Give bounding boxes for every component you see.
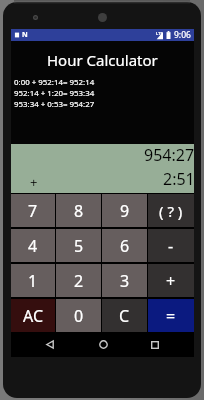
- staticText: ( ? ): [159, 201, 183, 221]
- button[interactable]: 5: [56, 229, 101, 262]
- button[interactable]: 3: [102, 264, 147, 297]
- button[interactable]: 7: [11, 194, 55, 227]
- staticText: 1: [28, 270, 38, 292]
- button[interactable]: Home: [90, 332, 116, 357]
- button[interactable]: C: [102, 299, 147, 332]
- staticText: 953:34 + 0:53= 954:27: [14, 99, 95, 110]
- staticText: 7: [28, 200, 38, 222]
- button[interactable]: 6: [102, 229, 147, 262]
- button[interactable]: Back: [37, 332, 63, 357]
- button[interactable]: 0: [56, 299, 101, 332]
- button[interactable]: AC: [11, 299, 55, 332]
- button[interactable]: -: [148, 229, 194, 262]
- staticText: 0:00 + 952:14= 952:14: [14, 77, 95, 88]
- button[interactable]: 2: [56, 264, 101, 297]
- staticText: 9:06: [174, 29, 191, 41]
- staticText: 8: [74, 200, 84, 222]
- button[interactable]: 4: [11, 229, 55, 262]
- staticText: +: [166, 270, 176, 292]
- staticText: C: [119, 305, 130, 327]
- button[interactable]: Recent apps: [142, 332, 168, 357]
- staticText: AC: [23, 305, 44, 327]
- staticText: 4: [28, 235, 38, 257]
- staticText: 2: [74, 270, 84, 292]
- staticText: Hour Calculator: [47, 50, 158, 70]
- staticText: +: [30, 173, 38, 191]
- button[interactable]: ( ? ): [148, 194, 194, 227]
- staticText: -: [168, 235, 174, 257]
- button[interactable]: +: [148, 264, 194, 297]
- staticText: 954:27: [144, 144, 195, 166]
- staticText: =: [166, 305, 176, 327]
- staticText: 5: [74, 235, 84, 257]
- staticText: N: [22, 30, 28, 40]
- button[interactable]: 1: [11, 264, 55, 297]
- staticText: 6: [120, 235, 130, 257]
- staticText: 952:14 + 1:20= 953:34: [14, 88, 95, 99]
- staticText: LTE: [156, 31, 163, 36]
- staticText: 0: [74, 305, 84, 327]
- button[interactable]: 9: [102, 194, 147, 227]
- staticText: 2:51: [163, 168, 195, 190]
- staticText: 9: [120, 200, 130, 222]
- button[interactable]: =: [148, 299, 194, 332]
- staticText: 3: [120, 270, 130, 292]
- button[interactable]: 8: [56, 194, 101, 227]
